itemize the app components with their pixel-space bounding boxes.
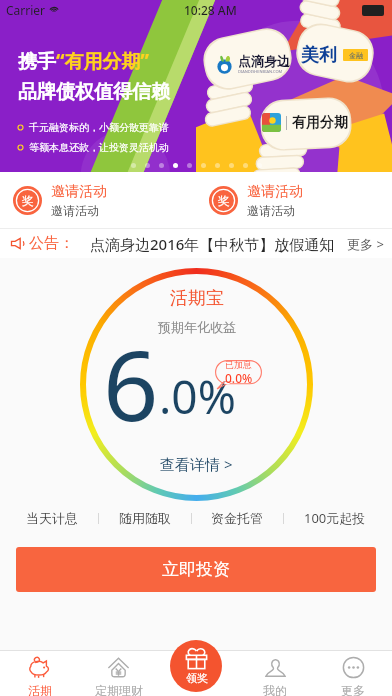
- staticText: 已加息: [225, 359, 252, 370]
- button[interactable]: 立即投资: [16, 547, 376, 592]
- staticText: .0%: [159, 365, 236, 428]
- staticText: 奖: [22, 193, 34, 208]
- staticText: 查看详情 >: [160, 454, 233, 474]
- staticText: 携手: [18, 50, 56, 74]
- staticText: 公告：: [29, 234, 74, 253]
- staticText: 资金托管: [211, 510, 263, 526]
- staticText: 活期: [28, 683, 52, 696]
- staticText: 立即投资: [162, 559, 230, 580]
- staticText: Carrier: [6, 2, 46, 18]
- staticText: 100元起投: [304, 509, 366, 527]
- button[interactable]: 定期理财: [79, 650, 158, 696]
- staticText: 等额本息还款，让投资灵活机动: [29, 141, 169, 154]
- staticText: 千元融资标的，小额分散更靠谱: [29, 121, 169, 134]
- staticText: 更多: [341, 683, 365, 696]
- button[interactable]: 奖: [196, 172, 392, 228]
- staticText: 定期理财: [95, 683, 143, 696]
- button[interactable]: 领奖: [170, 640, 222, 692]
- staticText: “有用分期”: [56, 48, 149, 74]
- staticText: 领奖: [186, 671, 208, 685]
- staticText: 0.0%: [225, 370, 253, 386]
- button[interactable]: 活期: [0, 650, 79, 696]
- staticText: 随用随取: [119, 510, 171, 526]
- button[interactable]: 奖: [0, 172, 196, 228]
- staticText: 预期年化收益: [158, 319, 236, 335]
- staticText: 邀请活动: [247, 203, 295, 218]
- staticText: 邀请活动: [51, 183, 107, 201]
- staticText: 邀请活动: [51, 203, 99, 218]
- button[interactable]: 我的: [236, 650, 314, 696]
- staticText: 点滴身边: [238, 53, 290, 69]
- button[interactable]: 查看详情 >: [150, 451, 243, 477]
- staticText: 更多 >: [347, 235, 384, 253]
- button[interactable]: 公告：: [0, 229, 392, 258]
- staticText: 10:28 AM: [184, 2, 237, 18]
- button[interactable]: 携手: [0, 0, 392, 172]
- staticText: 品牌债权值得信赖: [18, 80, 170, 104]
- staticText: DIANDISHENBIAN.COM: [238, 69, 283, 74]
- staticText: 奖: [218, 193, 230, 208]
- staticText: 我的: [263, 683, 287, 696]
- staticText: 活期宝: [170, 287, 224, 310]
- staticText: 金融: [349, 51, 363, 60]
- button[interactable]: 更多: [314, 650, 392, 696]
- staticText: 当天计息: [26, 510, 78, 526]
- staticText: 有用分期: [292, 114, 348, 132]
- staticText: 点滴身边2016年【中秋节】放假通知: [90, 234, 335, 254]
- staticText: 6: [103, 317, 159, 449]
- staticText: 美利: [301, 44, 337, 67]
- staticText: 邀请活动: [247, 183, 303, 201]
